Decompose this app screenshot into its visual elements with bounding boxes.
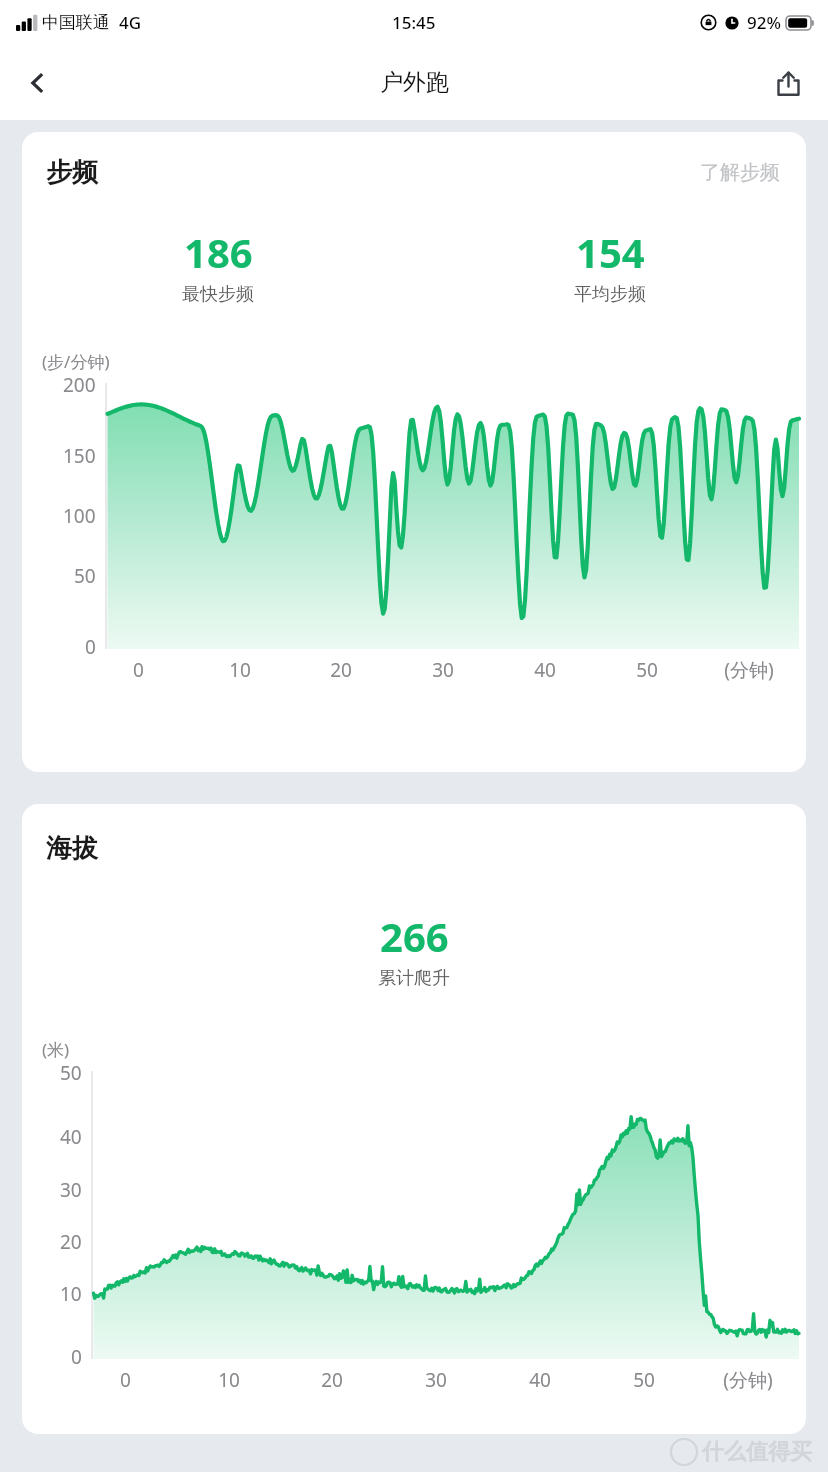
staticText: 266 <box>380 909 449 963</box>
staticText: 步频 <box>46 156 98 189</box>
staticText: 10 <box>60 1281 82 1307</box>
staticText: 50 <box>636 657 658 683</box>
staticText: 200 <box>63 372 96 398</box>
staticText: 0 <box>85 634 96 660</box>
staticText: 了解步频 <box>700 160 780 185</box>
staticText: 累计爬升 <box>378 967 450 990</box>
staticText: 20 <box>330 657 352 683</box>
staticText: 40 <box>529 1367 551 1393</box>
staticText: 50 <box>74 563 96 589</box>
staticText: 20 <box>321 1367 343 1393</box>
staticText: 4G <box>119 11 142 34</box>
staticText: (分钟) <box>724 657 774 683</box>
staticText: 100 <box>63 503 96 529</box>
staticText: (米) <box>42 1038 70 1061</box>
staticText: 户外跑 <box>380 68 449 97</box>
staticText: 154 <box>576 225 645 279</box>
staticText: 10 <box>218 1367 240 1393</box>
staticText: (分钟) <box>723 1367 773 1393</box>
staticText: 平均步频 <box>574 283 646 306</box>
staticText: 30 <box>432 657 454 683</box>
staticText: 10 <box>229 657 251 683</box>
staticText: 50 <box>60 1060 82 1086</box>
staticText: 30 <box>425 1367 447 1393</box>
button[interactable]: Share <box>762 57 814 109</box>
staticText: 50 <box>633 1367 655 1393</box>
staticText: 0 <box>133 657 144 683</box>
staticText: 150 <box>63 443 96 469</box>
button[interactable]: Back <box>10 55 66 111</box>
staticText: 最快步频 <box>182 283 254 306</box>
staticText: 40 <box>534 657 556 683</box>
staticText: 0 <box>71 1344 82 1370</box>
staticText: (步/分钟) <box>42 350 110 373</box>
staticText: 什么值得买 <box>702 1438 812 1466</box>
staticText: 186 <box>184 225 253 279</box>
staticText: 20 <box>60 1229 82 1255</box>
staticText: 40 <box>60 1124 82 1150</box>
staticText: 海拔 <box>46 832 98 865</box>
staticText: 中国联通 <box>42 12 110 33</box>
staticText: 92% <box>747 11 781 34</box>
button[interactable]: 了解步频 <box>696 156 784 189</box>
staticText: 30 <box>60 1177 82 1203</box>
staticText: 0 <box>120 1367 131 1393</box>
staticText: 15:45 <box>392 11 436 34</box>
